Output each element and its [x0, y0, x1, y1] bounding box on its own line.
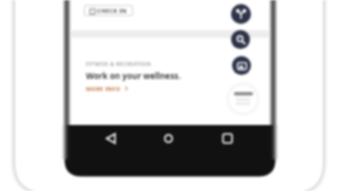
button[interactable]: CHECK IN	[84, 5, 133, 16]
staticText: MORE INFO	[86, 85, 121, 92]
button[interactable]: MORE INFO	[86, 85, 129, 92]
button[interactable]: Back	[102, 130, 119, 147]
button[interactable]: Recents	[219, 130, 236, 147]
button[interactable]: Directions	[231, 4, 251, 24]
button[interactable]: Map	[232, 56, 251, 75]
button[interactable]: Home	[160, 130, 177, 147]
button[interactable]: Search	[231, 30, 250, 49]
staticText: CHECK IN	[97, 7, 127, 15]
button[interactable]: Menu	[229, 85, 257, 113]
staticText: Work on your wellness.	[86, 70, 181, 81]
staticText: FITNESS & RECREATION	[86, 61, 152, 68]
